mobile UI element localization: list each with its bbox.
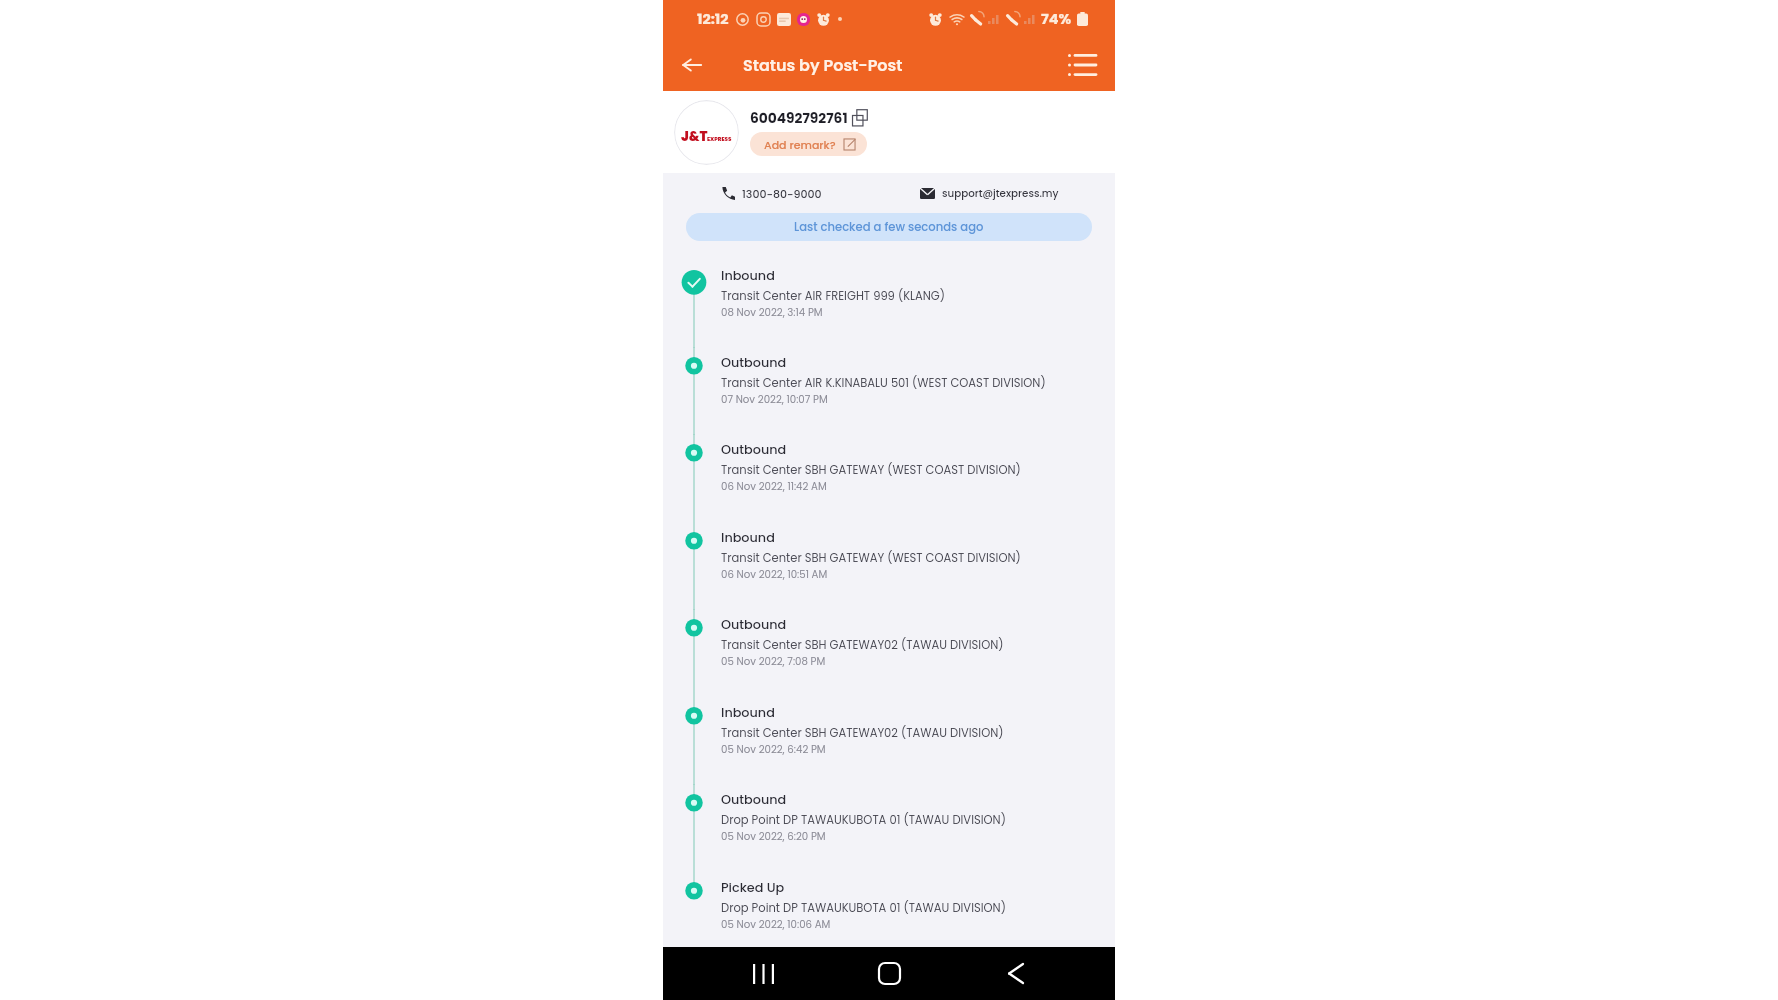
button[interactable]: Back [985, 947, 1045, 1000]
staticText: 12:12 [697, 9, 729, 29]
staticText: 06 Nov 2022, 10:51 AM [721, 567, 828, 581]
staticText: 05 Nov 2022, 7:08 PM [721, 654, 826, 668]
staticText: Inbound [721, 704, 775, 722]
staticText: Transit Center SBH GATEWAY02 (TAWAU DIVI… [721, 637, 1004, 653]
staticText: Inbound [721, 267, 775, 285]
button[interactable]: Inbound [663, 522, 1115, 610]
staticText: Transit Center SBH GATEWAY (WEST COAST D… [721, 550, 1021, 566]
staticText: Transit Center SBH GATEWAY02 (TAWAU DIVI… [721, 725, 1004, 741]
button[interactable]: Outbound [663, 434, 1115, 522]
staticText: Transit Center AIR FREIGHT 999 (KLANG) [721, 288, 946, 304]
button[interactable]: support@jtexpress.my [920, 173, 1059, 213]
staticText: Last checked a few seconds ago [794, 219, 984, 235]
staticText: 05 Nov 2022, 6:20 PM [721, 829, 826, 843]
staticText: Drop Point DP TAWAUKUBOTA 01 (TAWAU DIVI… [721, 812, 1006, 828]
button[interactable]: 1300-80-9000 [721, 173, 822, 213]
staticText: Inbound [721, 529, 775, 547]
staticText: 1300-80-9000 [742, 186, 822, 201]
button[interactable]: Outbound [663, 609, 1115, 697]
staticText: Add remark? [764, 137, 836, 152]
button[interactable]: Inbound [663, 697, 1115, 785]
staticText: support@jtexpress.my [942, 186, 1059, 200]
button[interactable]: Add remark? [750, 132, 867, 156]
button[interactable]: Outbound [663, 347, 1115, 435]
staticText: Drop Point DP TAWAUKUBOTA 01 (TAWAU DIVI… [721, 900, 1006, 916]
staticText: EXPRESS [707, 135, 732, 143]
staticText: 05 Nov 2022, 6:42 PM [721, 742, 826, 756]
button[interactable]: Back [665, 38, 718, 91]
staticText: J&T [681, 127, 708, 145]
staticText: Outbound [721, 441, 787, 459]
button[interactable]: Picked Up [663, 872, 1115, 960]
staticText: 06 Nov 2022, 11:42 AM [721, 479, 827, 493]
staticText: Outbound [721, 791, 787, 809]
staticText: 74% [1041, 9, 1072, 29]
staticText: 07 Nov 2022, 10:07 PM [721, 392, 828, 406]
button[interactable]: Recent apps [733, 947, 793, 1000]
staticText: Outbound [721, 354, 787, 372]
button[interactable]: Menu [1055, 38, 1108, 91]
staticText: Transit Center AIR K.KINABALU 501 (WEST … [721, 375, 1046, 391]
staticText: 05 Nov 2022, 10:06 AM [721, 917, 831, 931]
staticText: Outbound [721, 616, 787, 634]
button[interactable]: Outbound [663, 784, 1115, 872]
staticText: 600492792761 [750, 109, 848, 128]
button[interactable]: Home [859, 947, 919, 1000]
button[interactable]: Courier logo [674, 100, 739, 165]
staticText: Status by Post-Post [743, 54, 903, 76]
staticText: Picked Up [721, 879, 785, 897]
staticText: 08 Nov 2022, 3:14 PM [721, 305, 823, 319]
staticText: Transit Center SBH GATEWAY (WEST COAST D… [721, 462, 1021, 478]
button[interactable]: Inbound [663, 260, 1115, 348]
button[interactable]: Copy tracking number [850, 109, 868, 127]
button[interactable]: Last checked a few seconds ago [686, 213, 1092, 241]
